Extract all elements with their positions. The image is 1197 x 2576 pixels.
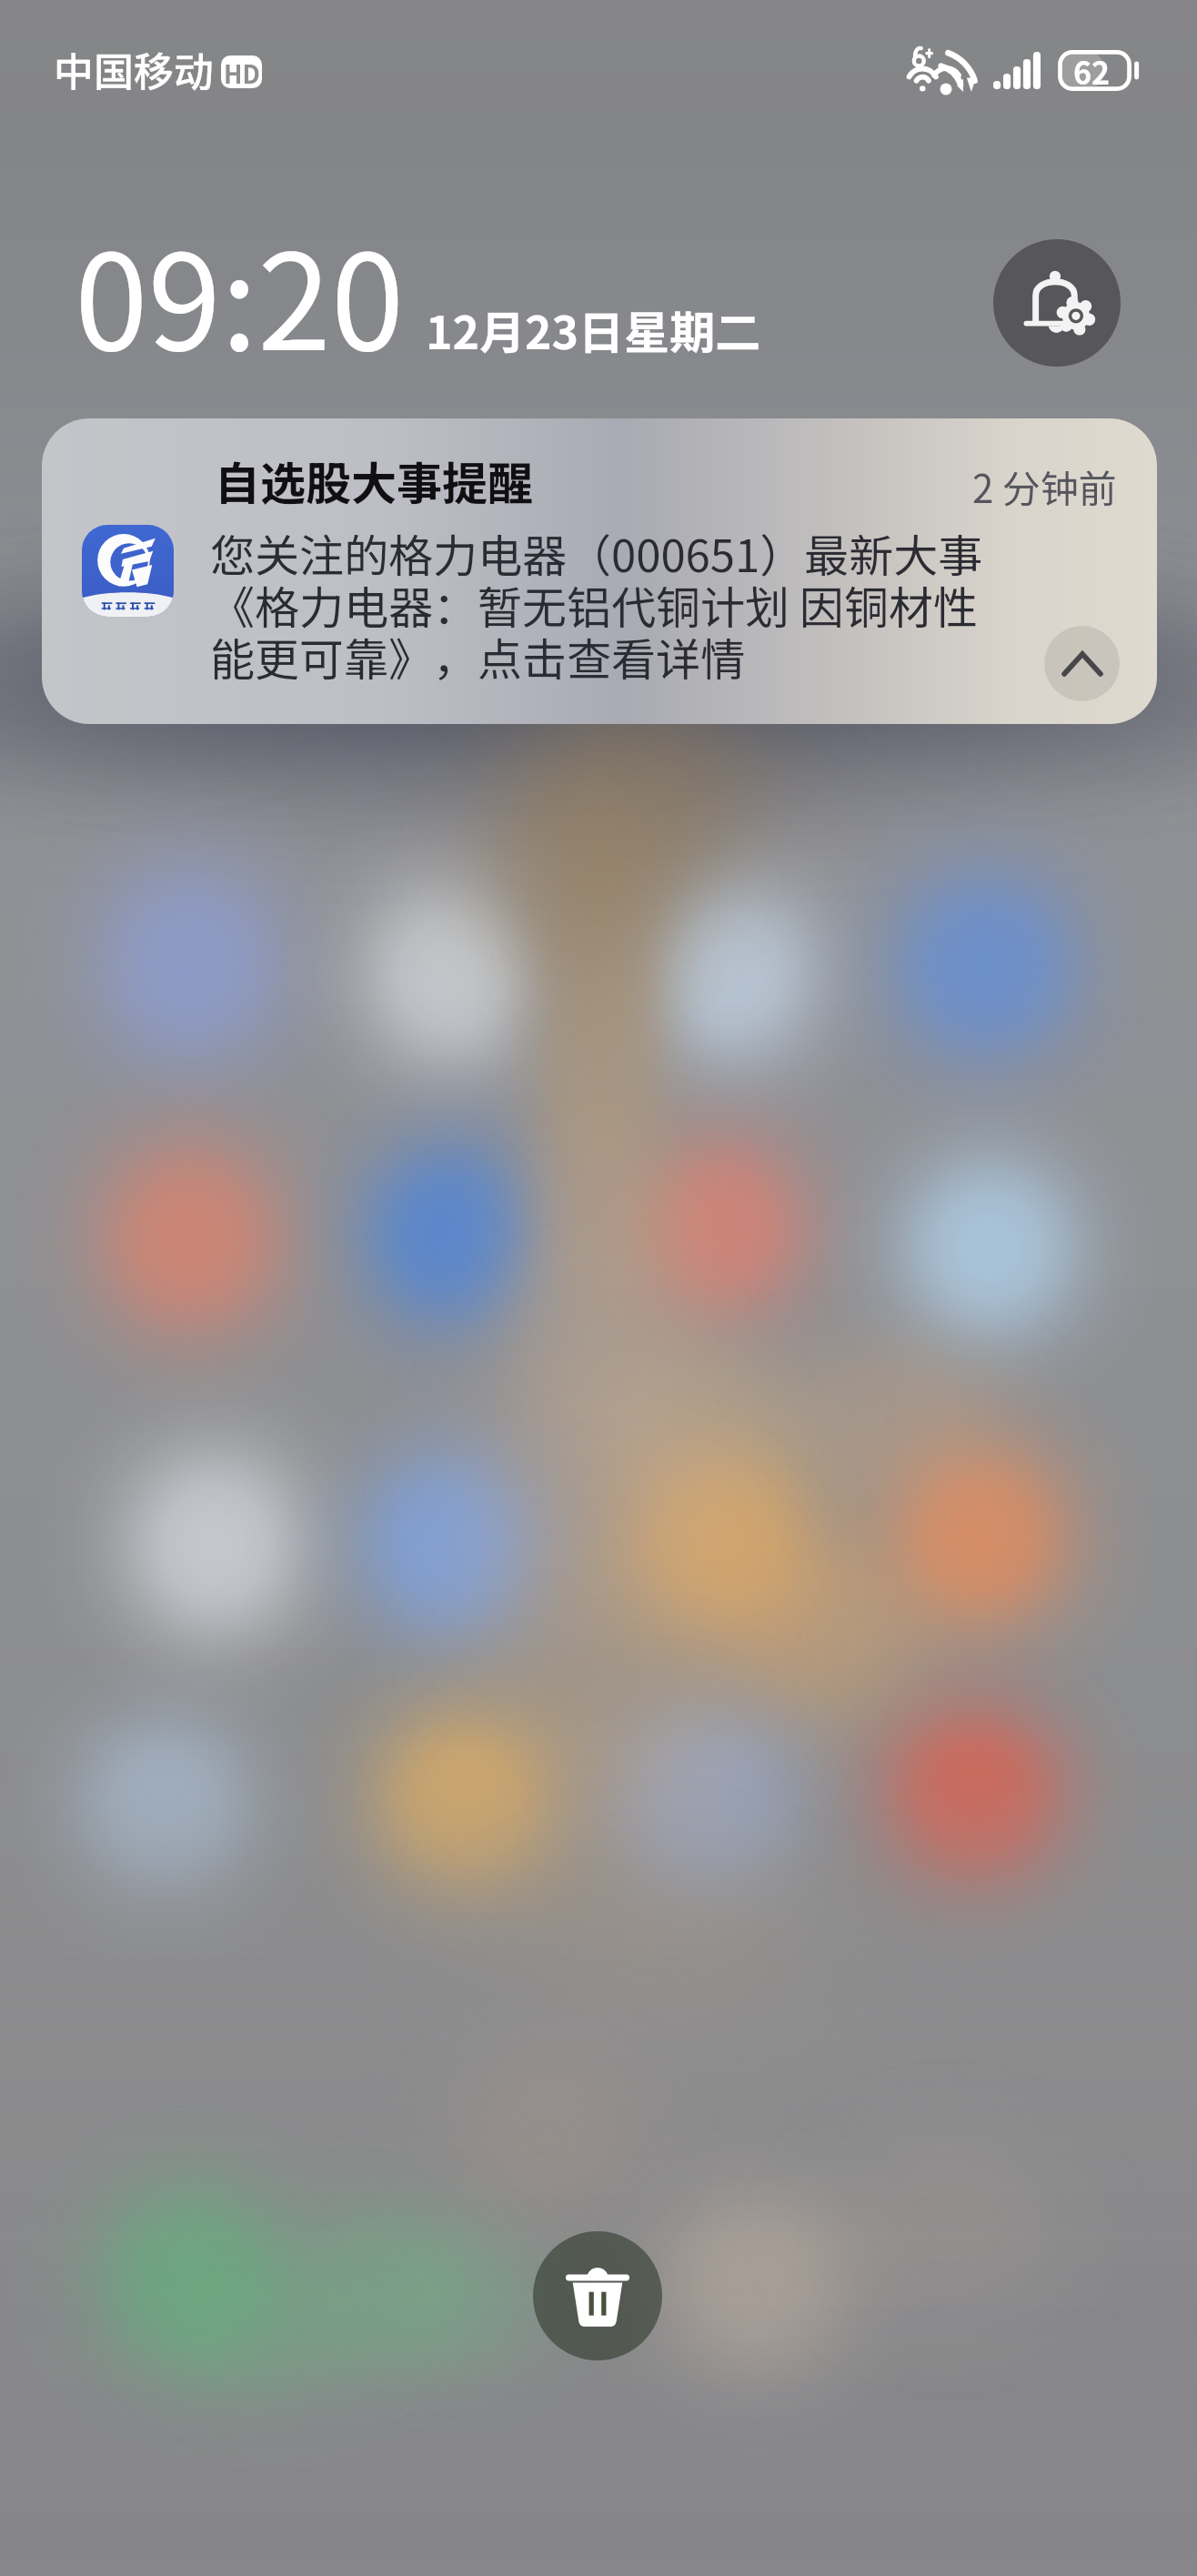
other: Wi-Fi [911, 45, 977, 92]
staticText: 62 [1073, 49, 1111, 90]
staticText: 2 分钟前 [972, 458, 1117, 514]
staticText: 中国移动 [54, 40, 214, 98]
staticText: HD [224, 55, 260, 88]
other: Mobile signal [993, 52, 1041, 89]
other: Battery 62 percent [1058, 50, 1140, 91]
button[interactable]: Clear all notifications [533, 2231, 662, 2360]
staticText: 12月23日星期二 [426, 297, 760, 362]
button[interactable]: 自选股大事提醒 [42, 418, 1157, 724]
button[interactable]: Collapse notification [1044, 626, 1120, 701]
staticText: 您关注的格力电器（000651）最新大事 《格力电器：暂无铝代铜计划 因铜材性 … [210, 520, 983, 689]
staticText: 自选股大事提醒 [215, 448, 533, 513]
staticText: 09:20 [75, 197, 405, 388]
button[interactable]: Notification settings [993, 239, 1121, 367]
